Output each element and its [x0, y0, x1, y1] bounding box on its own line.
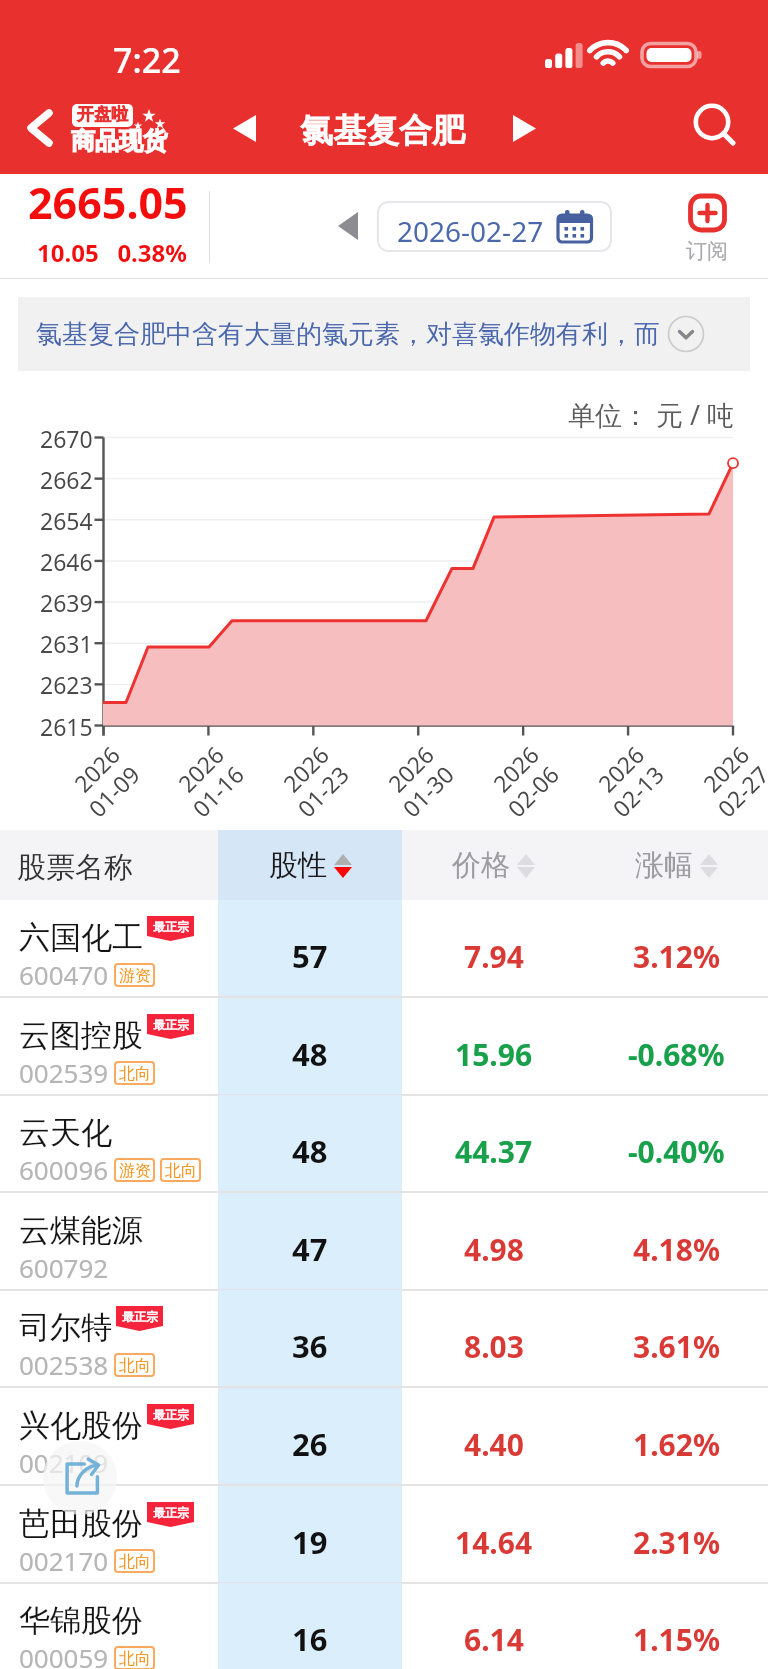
staticText: 600470	[19, 957, 109, 992]
staticText: 4.18%	[633, 1229, 720, 1270]
staticText: 36	[292, 1325, 328, 1367]
staticText: 47	[292, 1228, 328, 1270]
staticText: 单位： 元 / 吨	[568, 396, 735, 433]
button[interactable]: 订阅 Subscribe	[683, 193, 731, 264]
staticText: 涨幅	[635, 847, 693, 884]
button[interactable]: 涨幅	[585, 830, 768, 900]
staticText: 2631	[40, 628, 93, 659]
button[interactable]: 价格	[402, 830, 585, 900]
staticText: 股性	[269, 847, 327, 884]
button[interactable]: Share	[43, 1441, 117, 1515]
button[interactable]: Search	[686, 96, 748, 158]
staticText: 57	[292, 935, 328, 977]
staticText: 000059	[19, 1640, 109, 1669]
staticText: 002109	[19, 1445, 109, 1480]
staticText: 16	[292, 1618, 328, 1660]
staticText: 2026 02-27	[690, 739, 768, 825]
staticText: 北向	[119, 1356, 151, 1376]
staticText: 开盘啦	[77, 104, 128, 125]
staticText: 4.40	[464, 1424, 524, 1465]
button[interactable]: 六国化工	[0, 900, 768, 998]
staticText: 002170	[19, 1543, 109, 1578]
staticText: 2026 01-09	[61, 739, 146, 825]
button[interactable]: 2026-02-27	[377, 201, 612, 252]
staticText: 2654	[40, 505, 93, 536]
staticText: 2623	[40, 669, 93, 700]
staticText: 2662	[40, 464, 93, 495]
button[interactable]: 兴化股份	[0, 1388, 768, 1486]
button[interactable]: Back	[12, 100, 68, 156]
staticText: 氯基复合肥	[300, 110, 465, 152]
staticText: 48	[292, 1033, 328, 1075]
staticText: 游资	[119, 966, 151, 986]
staticText: 600792	[19, 1250, 109, 1285]
staticText: 2639	[40, 587, 93, 618]
staticText: 六国化工	[19, 918, 143, 957]
staticText: 最正宗	[122, 1309, 158, 1324]
button[interactable]: 开盘啦商品现货	[71, 102, 171, 152]
staticText: 3.61%	[633, 1326, 720, 1367]
staticText: 2026 01-16	[165, 739, 250, 825]
staticText: 10.05 0.38%	[37, 236, 187, 269]
staticText: 7:22	[113, 37, 181, 83]
staticText: 2026 01-23	[270, 739, 355, 825]
button[interactable]: 芭田股份	[0, 1486, 768, 1584]
button[interactable]: 云煤能源	[0, 1193, 768, 1291]
button[interactable]: 股票名称	[0, 830, 218, 900]
staticText: 最正宗	[153, 1505, 189, 1520]
staticText: 2.31%	[633, 1522, 720, 1563]
staticText: 7.94	[464, 936, 524, 977]
staticText: 氯基复合肥中含有大量的氯元素，对喜氯作物有利，而	[36, 318, 660, 351]
staticText: 2026 02-06	[480, 739, 565, 825]
staticText: 002539	[19, 1055, 109, 1090]
staticText: 价格	[452, 847, 510, 884]
button[interactable]: 司尔特	[0, 1290, 768, 1388]
button[interactable]: 云图控股	[0, 998, 768, 1096]
staticText: 云煤能源	[19, 1211, 143, 1250]
staticText: 北向	[119, 1649, 151, 1669]
staticText: 15.96	[455, 1034, 533, 1075]
staticText: 2646	[40, 546, 93, 577]
staticText: 600096	[19, 1152, 109, 1187]
staticText: 3.12%	[633, 936, 720, 977]
staticText: 云图控股	[19, 1016, 143, 1055]
staticText: 14.64	[455, 1522, 533, 1563]
staticText: 兴化股份	[19, 1406, 143, 1445]
staticText: 002538	[19, 1347, 109, 1382]
staticText: 1.62%	[633, 1424, 720, 1465]
staticText: 北向	[119, 1552, 151, 1572]
staticText: 2615	[40, 711, 93, 742]
staticText: -0.40%	[628, 1131, 725, 1172]
staticText: 游资	[119, 1161, 151, 1181]
button[interactable]: 氯基复合肥中含有大量的氯元素，对喜氯作物有利，而	[18, 297, 750, 371]
staticText: 19	[292, 1521, 328, 1563]
staticText: 商品现货	[71, 126, 167, 156]
button[interactable]: 华锦股份	[0, 1583, 768, 1669]
staticText: 26	[292, 1423, 328, 1465]
staticText: 华锦股份	[19, 1601, 143, 1640]
staticText: 44.37	[455, 1131, 533, 1172]
staticText: 司尔特	[19, 1308, 112, 1347]
button[interactable]: Previous commodity	[226, 102, 262, 154]
staticText: 云天化	[19, 1113, 112, 1152]
button[interactable]: 云天化	[0, 1095, 768, 1193]
button[interactable]: Next commodity	[506, 102, 542, 154]
staticText: 最正宗	[153, 1017, 189, 1032]
staticText: 芭田股份	[19, 1504, 143, 1543]
button[interactable]: Previous day	[326, 204, 370, 248]
staticText: 最正宗	[153, 1407, 189, 1422]
staticText: 北向	[119, 1064, 151, 1084]
staticText: 股票名称	[17, 849, 133, 886]
staticText: 6.14	[464, 1619, 524, 1660]
staticText: 48	[292, 1130, 328, 1172]
staticText: 订阅	[686, 238, 728, 264]
staticText: 2026 01-30	[375, 739, 460, 825]
staticText: 最正宗	[153, 919, 189, 934]
staticText: 2026-02-27	[397, 212, 544, 250]
staticText: 4.98	[464, 1229, 524, 1270]
staticText: 2670	[40, 423, 93, 454]
button[interactable]: 股性	[218, 830, 402, 900]
staticText: 2026 02-13	[585, 739, 670, 825]
staticText: 北向	[165, 1161, 197, 1181]
staticText: -0.68%	[628, 1034, 725, 1075]
